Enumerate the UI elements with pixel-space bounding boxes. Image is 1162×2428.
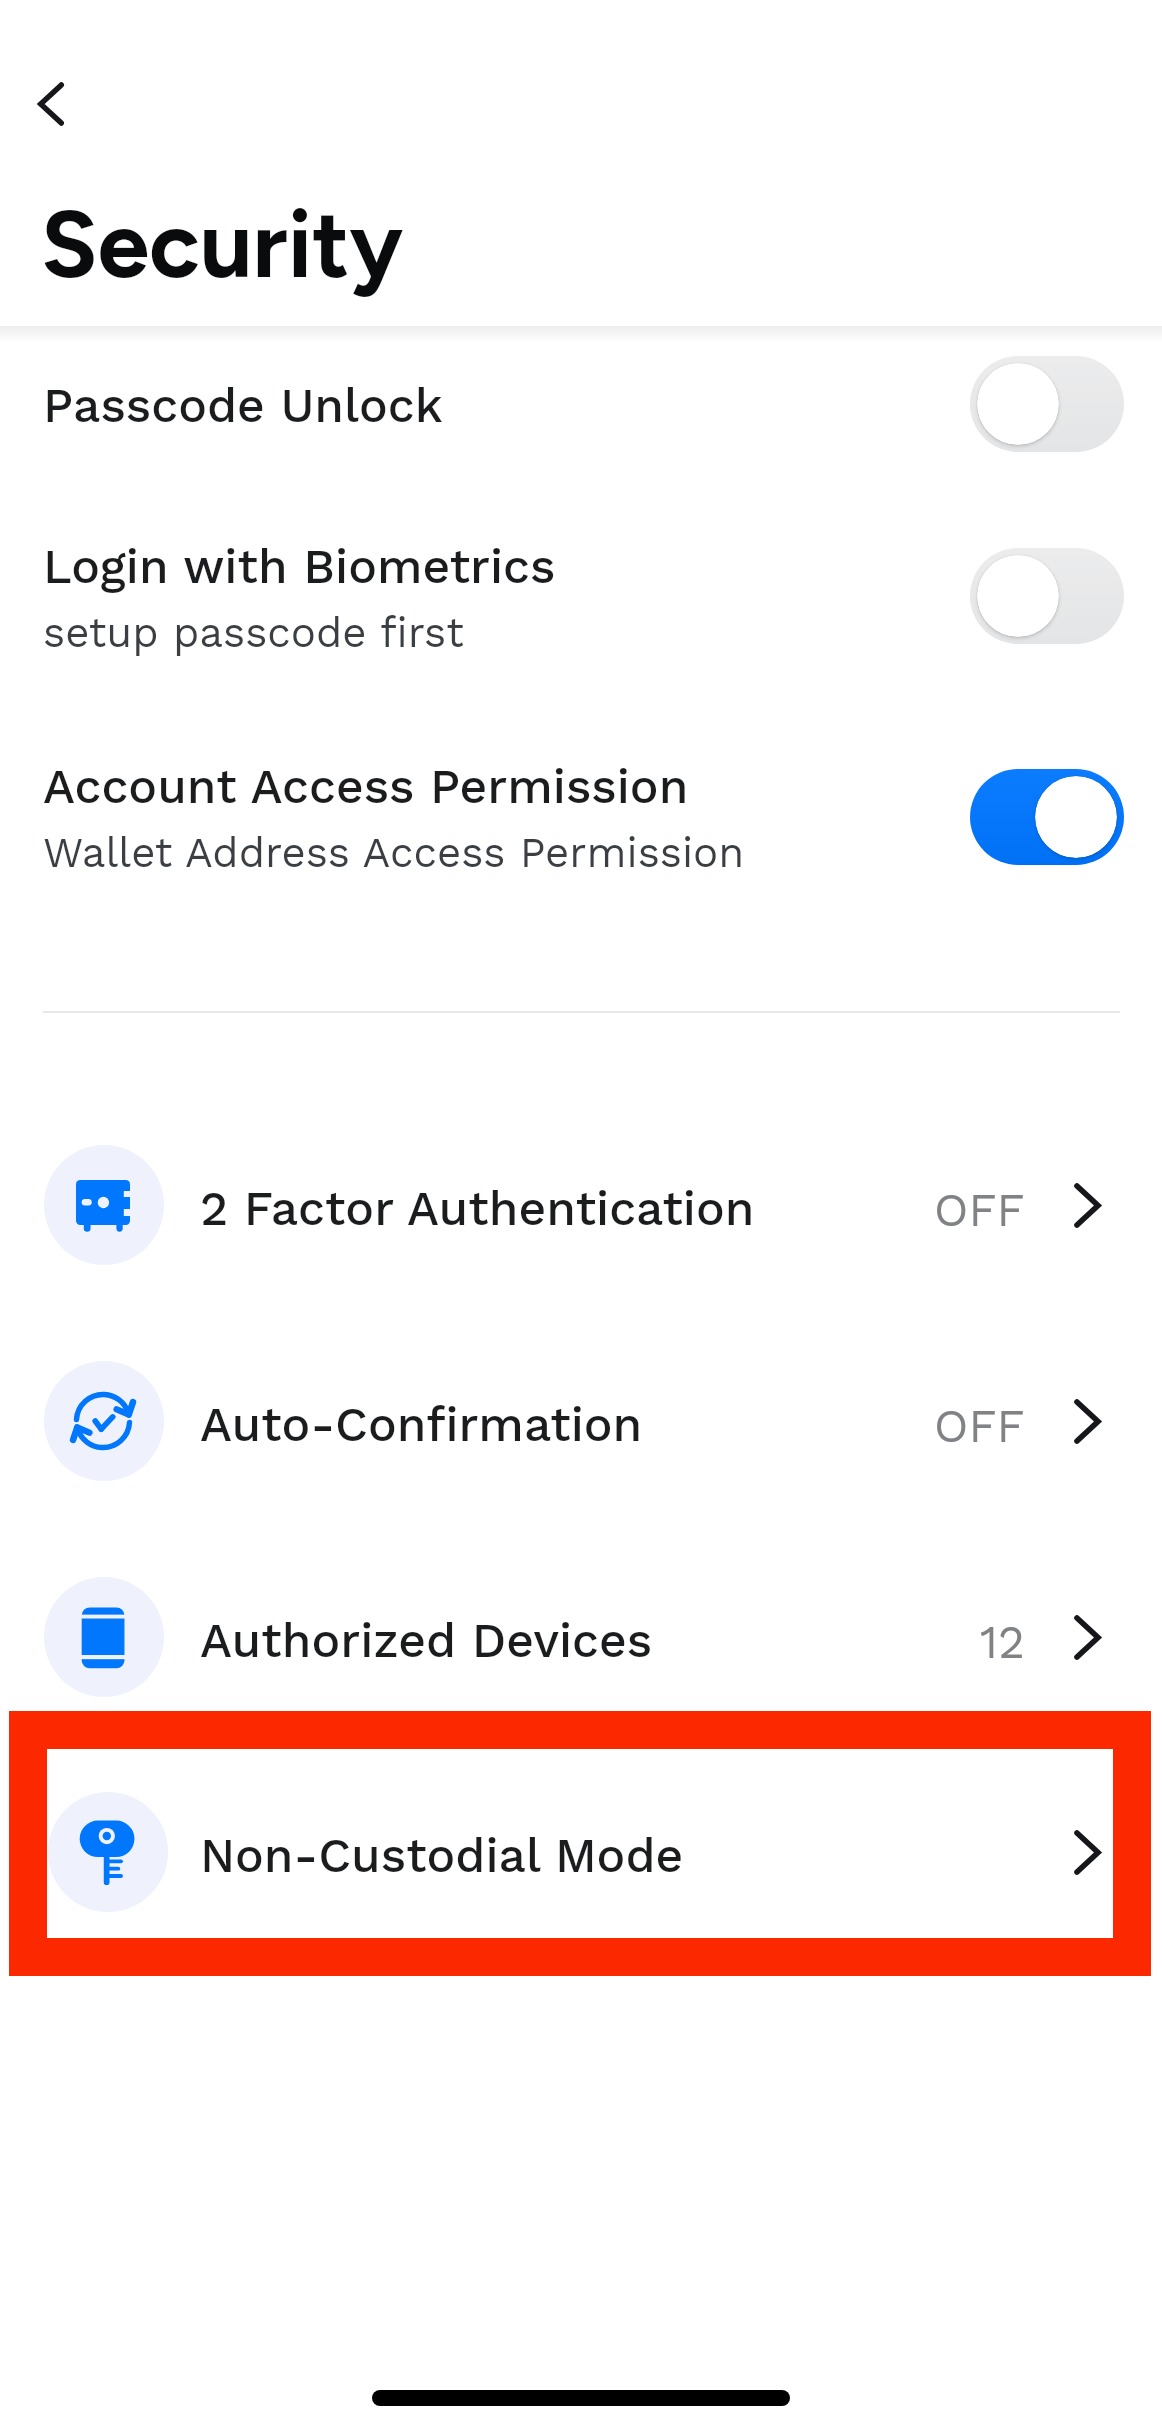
button[interactable]: Toggle off	[970, 356, 1124, 452]
button[interactable]: 2 Factor Authentication	[0, 1125, 1162, 1285]
staticText: Passcode Unlock	[43, 377, 443, 433]
staticText: OFF	[934, 1399, 1025, 1453]
button[interactable]: Non-Custodial Mode	[0, 1772, 1162, 1932]
staticText: OFF	[934, 1183, 1025, 1237]
button[interactable]: Authorized Devices	[0, 1557, 1162, 1717]
button[interactable]: Account Access Permission	[0, 727, 1162, 891]
staticText: Account Access Permission	[43, 758, 689, 814]
staticText: 2 Factor Authentication	[200, 1180, 755, 1236]
staticText: Wallet Address Access Permission	[43, 828, 745, 877]
staticText: Login with Biometrics	[43, 538, 556, 594]
staticText: Auto-Confirmation	[200, 1396, 643, 1452]
button[interactable]: Login with Biometrics	[0, 507, 1162, 671]
staticText: Non-Custodial Mode	[200, 1827, 684, 1883]
staticText: setup passcode first	[43, 608, 464, 657]
button[interactable]: Toggle off	[970, 548, 1124, 644]
button[interactable]: Auto-Confirmation	[0, 1341, 1162, 1501]
staticText: Security	[41, 189, 404, 301]
button[interactable]: Toggle on	[970, 769, 1124, 865]
button[interactable]: Back	[9, 62, 93, 146]
button[interactable]: Passcode Unlock	[0, 346, 1162, 446]
staticText: Authorized Devices	[200, 1612, 653, 1668]
staticText: 12	[980, 1615, 1025, 1669]
